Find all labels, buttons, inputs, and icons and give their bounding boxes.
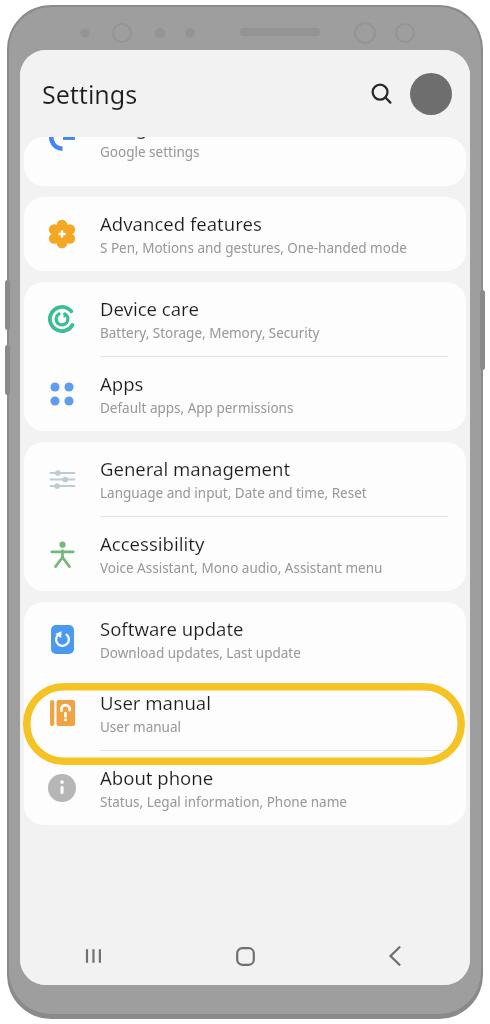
button[interactable]: Accessibility [24, 517, 466, 591]
button[interactable]: Home [170, 927, 320, 985]
staticText: General management [100, 456, 291, 481]
button[interactable]: Recent apps [20, 927, 170, 985]
staticText: Google [100, 137, 163, 140]
staticText: Google settings [100, 143, 200, 161]
button[interactable]: Apps [24, 357, 466, 431]
staticText: Status, Legal information, Phone name [100, 793, 347, 811]
button[interactable]: Google [24, 137, 466, 186]
button[interactable]: Search [360, 72, 404, 116]
button[interactable]: About phone [24, 751, 466, 825]
staticText: Advanced features [100, 211, 262, 236]
button[interactable]: Device care [24, 282, 466, 356]
staticText: Accessibility [100, 531, 205, 556]
staticText: Settings [42, 77, 138, 111]
staticText: Language and input, Date and time, Reset [100, 484, 367, 502]
staticText: User manual [100, 718, 181, 736]
button[interactable]: General management [24, 442, 466, 516]
staticText: Software update [100, 616, 244, 641]
button[interactable]: Back [320, 927, 470, 985]
staticText: About phone [100, 765, 214, 790]
button[interactable]: Software update [24, 602, 466, 676]
button[interactable]: Account [410, 73, 452, 115]
staticText: Download updates, Last update [100, 644, 301, 662]
staticText: User manual [100, 690, 211, 715]
staticText: Apps [100, 371, 144, 396]
staticText: Default apps, App permissions [100, 399, 294, 417]
staticText: Battery, Storage, Memory, Security [100, 324, 320, 342]
staticText: Device care [100, 296, 199, 321]
staticText: Voice Assistant, Mono audio, Assistant m… [100, 559, 383, 577]
staticText: S Pen, Motions and gestures, One-handed … [100, 239, 407, 257]
button[interactable]: Advanced features [24, 197, 466, 271]
button[interactable]: User manual [24, 676, 466, 750]
